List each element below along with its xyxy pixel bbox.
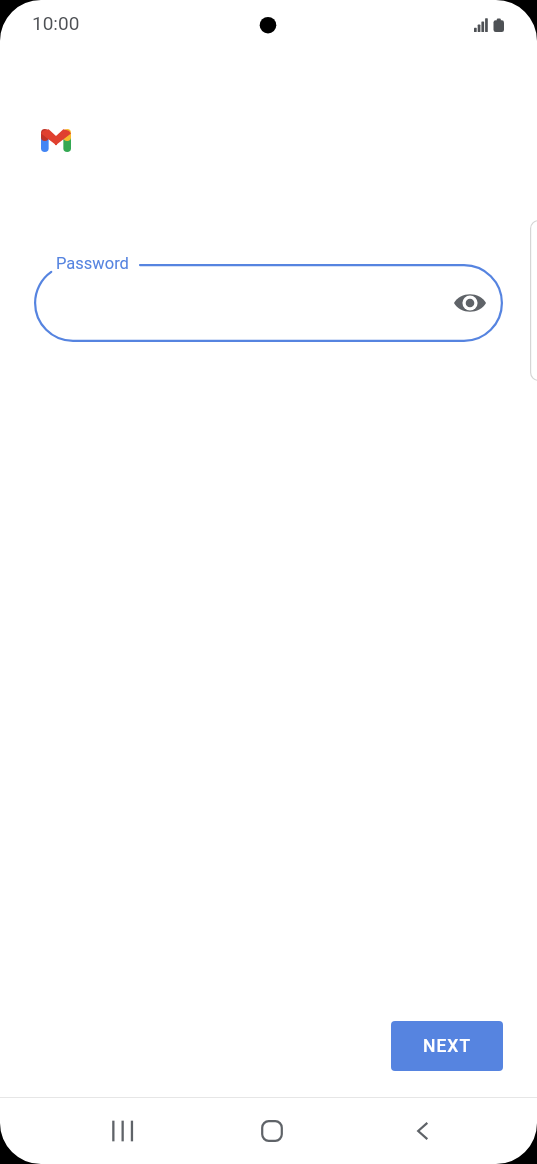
staticText: Password — [56, 254, 129, 273]
button[interactable]: Recents — [97, 1107, 145, 1155]
button[interactable]: Home — [248, 1107, 296, 1155]
staticText: 10:00 — [32, 12, 80, 34]
button[interactable]: Show password — [448, 281, 492, 325]
staticText: NEXT — [423, 1036, 472, 1057]
button[interactable]: Password — [34, 264, 503, 342]
button[interactable]: Back — [399, 1107, 447, 1155]
button[interactable]: NEXT — [391, 1021, 503, 1071]
